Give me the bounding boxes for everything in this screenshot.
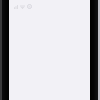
button[interactable]: Signal strength — [14, 5, 18, 9]
button[interactable]: Wi-Fi — [20, 5, 25, 9]
button[interactable]: Account — [27, 4, 32, 9]
